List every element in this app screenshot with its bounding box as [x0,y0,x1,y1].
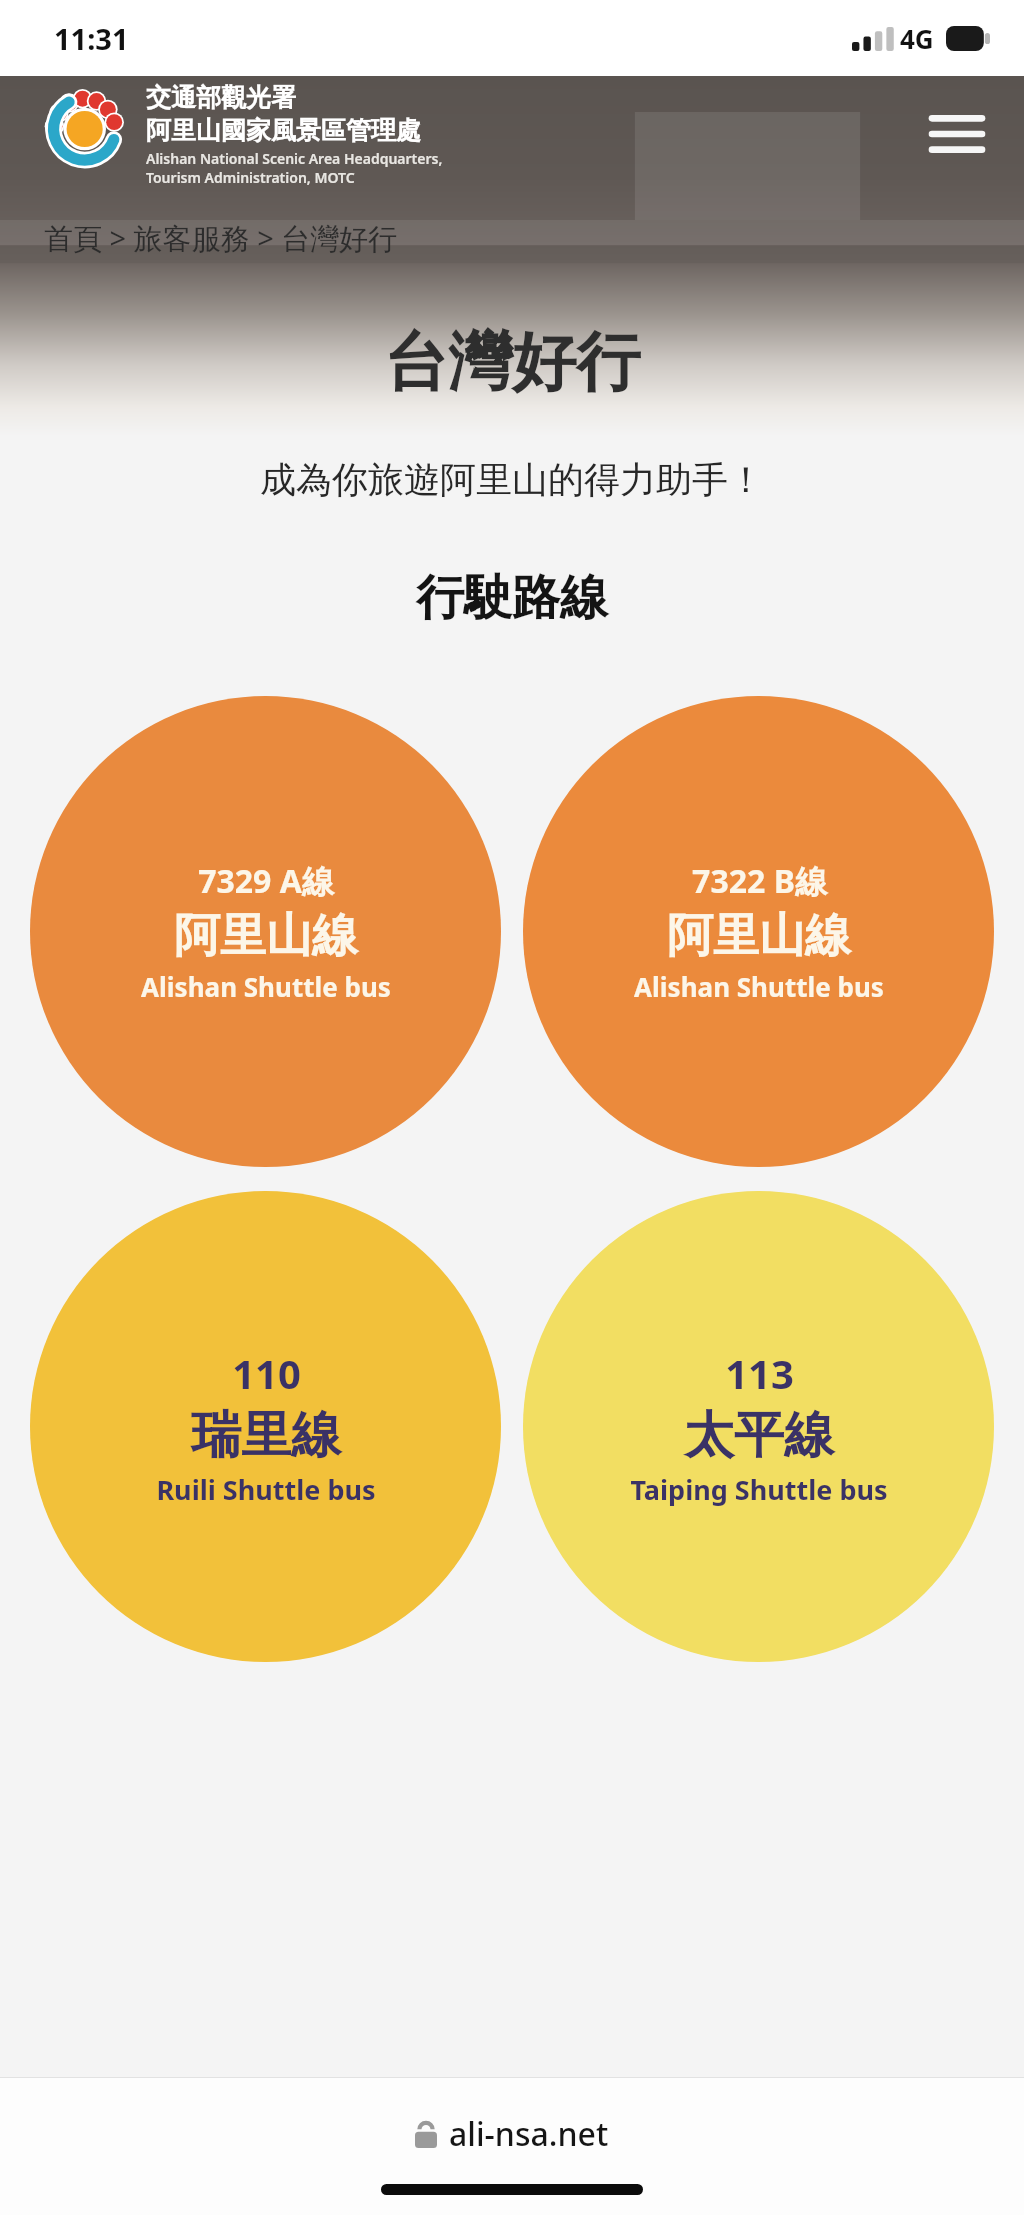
staticText: Ruili Shuttle bus [156,1471,376,1508]
button[interactable]: Open menu [920,97,994,171]
staticText: 113 [725,1346,794,1400]
button[interactable]: 7329 A線 [30,696,501,1167]
staticText: 太平線 [684,1404,834,1467]
staticText: 阿里山國家風景區管理處 [146,115,421,146]
staticText: Alishan Shuttle bus [634,969,884,1004]
button[interactable]: ali-nsa.net [415,2112,609,2156]
staticText: Alishan Shuttle bus [141,969,391,1004]
staticText: 首頁 > 旅客服務 > 台灣好行 [44,218,398,258]
staticText: 交通部觀光署 [146,82,296,113]
staticText: 阿里山線 [174,907,358,965]
staticText: 阿里山線 [667,907,851,965]
button[interactable]: 7322 B線 [523,696,994,1167]
staticText: 7329 A線 [198,859,334,903]
staticText: Taiping Shuttle bus [630,1471,888,1508]
staticText: 台灣好行 [0,322,1024,403]
staticText: Alishan National Scenic Area Headquarter… [146,149,443,168]
staticText: 11:31 [54,19,129,58]
button[interactable]: 110 [30,1191,501,1662]
staticText: 行駛路線 [0,568,1024,628]
staticText: 110 [232,1346,301,1400]
staticText: 4G [900,21,934,56]
staticText: 成為你旅遊阿里山的得力助手！ [0,457,1024,502]
staticText: 7322 B線 [692,859,827,903]
staticText: 瑞里線 [191,1404,341,1467]
staticText: Tourism Administration, MOTC [146,168,355,187]
button[interactable]: 113 [523,1191,994,1662]
staticText: ali-nsa.net [449,2112,609,2156]
